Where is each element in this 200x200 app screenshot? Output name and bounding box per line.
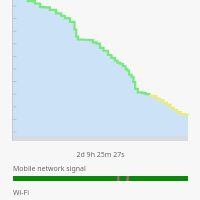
- staticText: 2d 9h 25m 27s: [76, 150, 125, 160]
- staticText: Mobile network signal: [13, 164, 86, 174]
- button[interactable]: Wi-Fi: [0, 188, 200, 200]
- button[interactable]: Battery level history chart: [0, 0, 200, 148]
- staticText: Wi-Fi: [13, 188, 30, 198]
- button[interactable]: Mobile network signal: [0, 162, 200, 181]
